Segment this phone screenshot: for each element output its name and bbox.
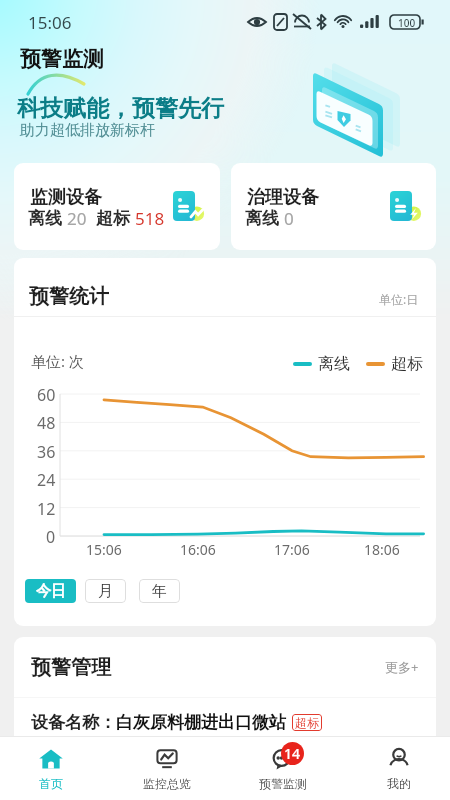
staticText: 月 — [98, 582, 113, 601]
button[interactable]: 首页 — [6, 737, 96, 800]
staticText: 离线 — [318, 354, 350, 374]
staticText: 预警管理 — [31, 655, 111, 680]
staticText: 超标 — [96, 208, 130, 229]
staticText: 离线 — [245, 208, 279, 229]
staticText: 17:06 — [274, 540, 310, 559]
staticText: 治理设备 — [247, 186, 319, 209]
staticText: 预警统计 — [29, 284, 109, 309]
staticText: 48 — [37, 412, 56, 434]
staticText: 更多+ — [385, 658, 419, 676]
button[interactable]: 我的 — [354, 737, 444, 800]
staticText: 监测设备 — [30, 186, 102, 209]
staticText: 助力超低排放新标杆 — [20, 121, 155, 140]
staticText: 24 — [37, 469, 56, 491]
staticText: 18:06 — [364, 540, 400, 559]
button[interactable]: 年 — [139, 579, 180, 603]
staticText: 14 — [284, 744, 301, 763]
staticText: 超标 — [391, 354, 423, 374]
staticText: 518 — [135, 207, 165, 230]
button[interactable]: 治理设备 — [231, 163, 436, 250]
staticText: 100 — [398, 16, 416, 30]
button[interactable]: 今日 — [25, 579, 76, 603]
button[interactable]: 预警监测 — [238, 737, 328, 800]
staticText: 首页 — [39, 776, 63, 791]
staticText: 科技赋能，预警先行 — [17, 94, 224, 123]
staticText: 36 — [37, 441, 56, 463]
staticText: 16:06 — [180, 540, 216, 559]
staticText: 我的 — [387, 776, 411, 791]
staticText: 15:06 — [28, 11, 72, 34]
staticText: 年 — [152, 582, 167, 601]
button[interactable]: 监测设备 — [14, 163, 220, 250]
button[interactable]: 月 — [85, 579, 126, 603]
staticText: 单位: 次 — [31, 351, 84, 371]
staticText: 白灰原料棚进出口微站 — [116, 712, 286, 733]
staticText: 预警监测 — [259, 776, 307, 791]
staticText: 12 — [37, 498, 56, 520]
staticText: 0 — [284, 207, 294, 230]
staticText: 单位:日 — [379, 291, 419, 307]
staticText: 预警监测 — [20, 46, 450, 72]
staticText: 离线 — [28, 208, 62, 229]
button[interactable]: 监控总览 — [122, 737, 212, 800]
staticText: 20 — [67, 207, 87, 230]
staticText: 15:06 — [86, 540, 122, 559]
staticText: 设备名称： — [31, 712, 116, 733]
staticText: 60 — [37, 384, 56, 406]
staticText: 监控总览 — [143, 776, 191, 791]
staticText: 0 — [46, 526, 56, 548]
staticText: 今日 — [36, 582, 66, 601]
staticText: 超标 — [295, 715, 319, 730]
